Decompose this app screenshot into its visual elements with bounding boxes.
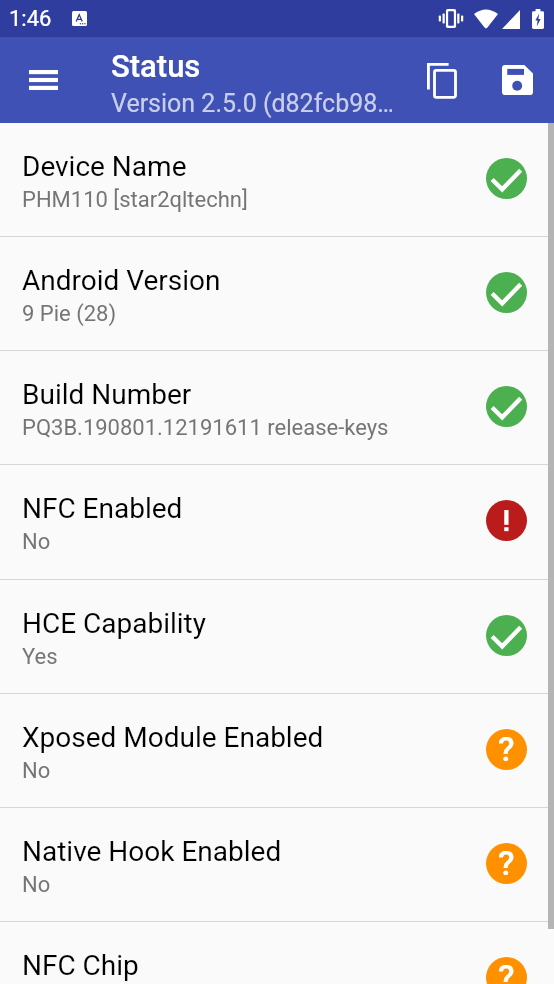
staticText: Build Number: [22, 378, 192, 411]
staticText: PHM110 [star2qltechn]: [22, 187, 248, 213]
staticText: Yes: [22, 644, 58, 670]
staticText: Status: [111, 48, 201, 84]
staticText: HCE Capability: [22, 607, 207, 640]
button[interactable]: Xposed Module Enabled: [0, 694, 554, 808]
staticText: 9 Pie (28): [22, 301, 117, 327]
button[interactable]: Native Hook Enabled: [0, 808, 554, 922]
staticText: Version 2.5.0 (d82fcb98…: [111, 89, 392, 118]
staticText: Xposed Module Enabled: [22, 721, 324, 754]
button[interactable]: Device Name: [0, 123, 554, 237]
button[interactable]: NFC Chip: [0, 922, 554, 984]
staticText: Device Name: [22, 150, 187, 183]
button[interactable]: Android Version: [0, 237, 554, 351]
staticText: ?: [498, 729, 515, 769]
staticText: No: [22, 529, 51, 555]
button[interactable]: Save: [481, 37, 553, 123]
staticText: 1:46: [9, 6, 52, 32]
staticText: Android Version: [22, 264, 221, 297]
staticText: NFC Chip: [22, 949, 139, 982]
staticText: ?: [498, 957, 515, 984]
button[interactable]: Build Number: [0, 351, 554, 465]
staticText: No: [22, 758, 51, 784]
staticText: ?: [498, 843, 515, 883]
button[interactable]: Copy: [406, 37, 478, 123]
button[interactable]: NFC Enabled: [0, 465, 554, 579]
staticText: Native Hook Enabled: [22, 835, 282, 868]
staticText: PQ3B.190801.12191611 release-keys: [22, 415, 389, 441]
button[interactable]: Open navigation drawer: [19, 56, 67, 104]
button[interactable]: HCE Capability: [0, 580, 554, 694]
staticText: No: [22, 872, 51, 898]
staticText: NFC Enabled: [22, 492, 183, 525]
